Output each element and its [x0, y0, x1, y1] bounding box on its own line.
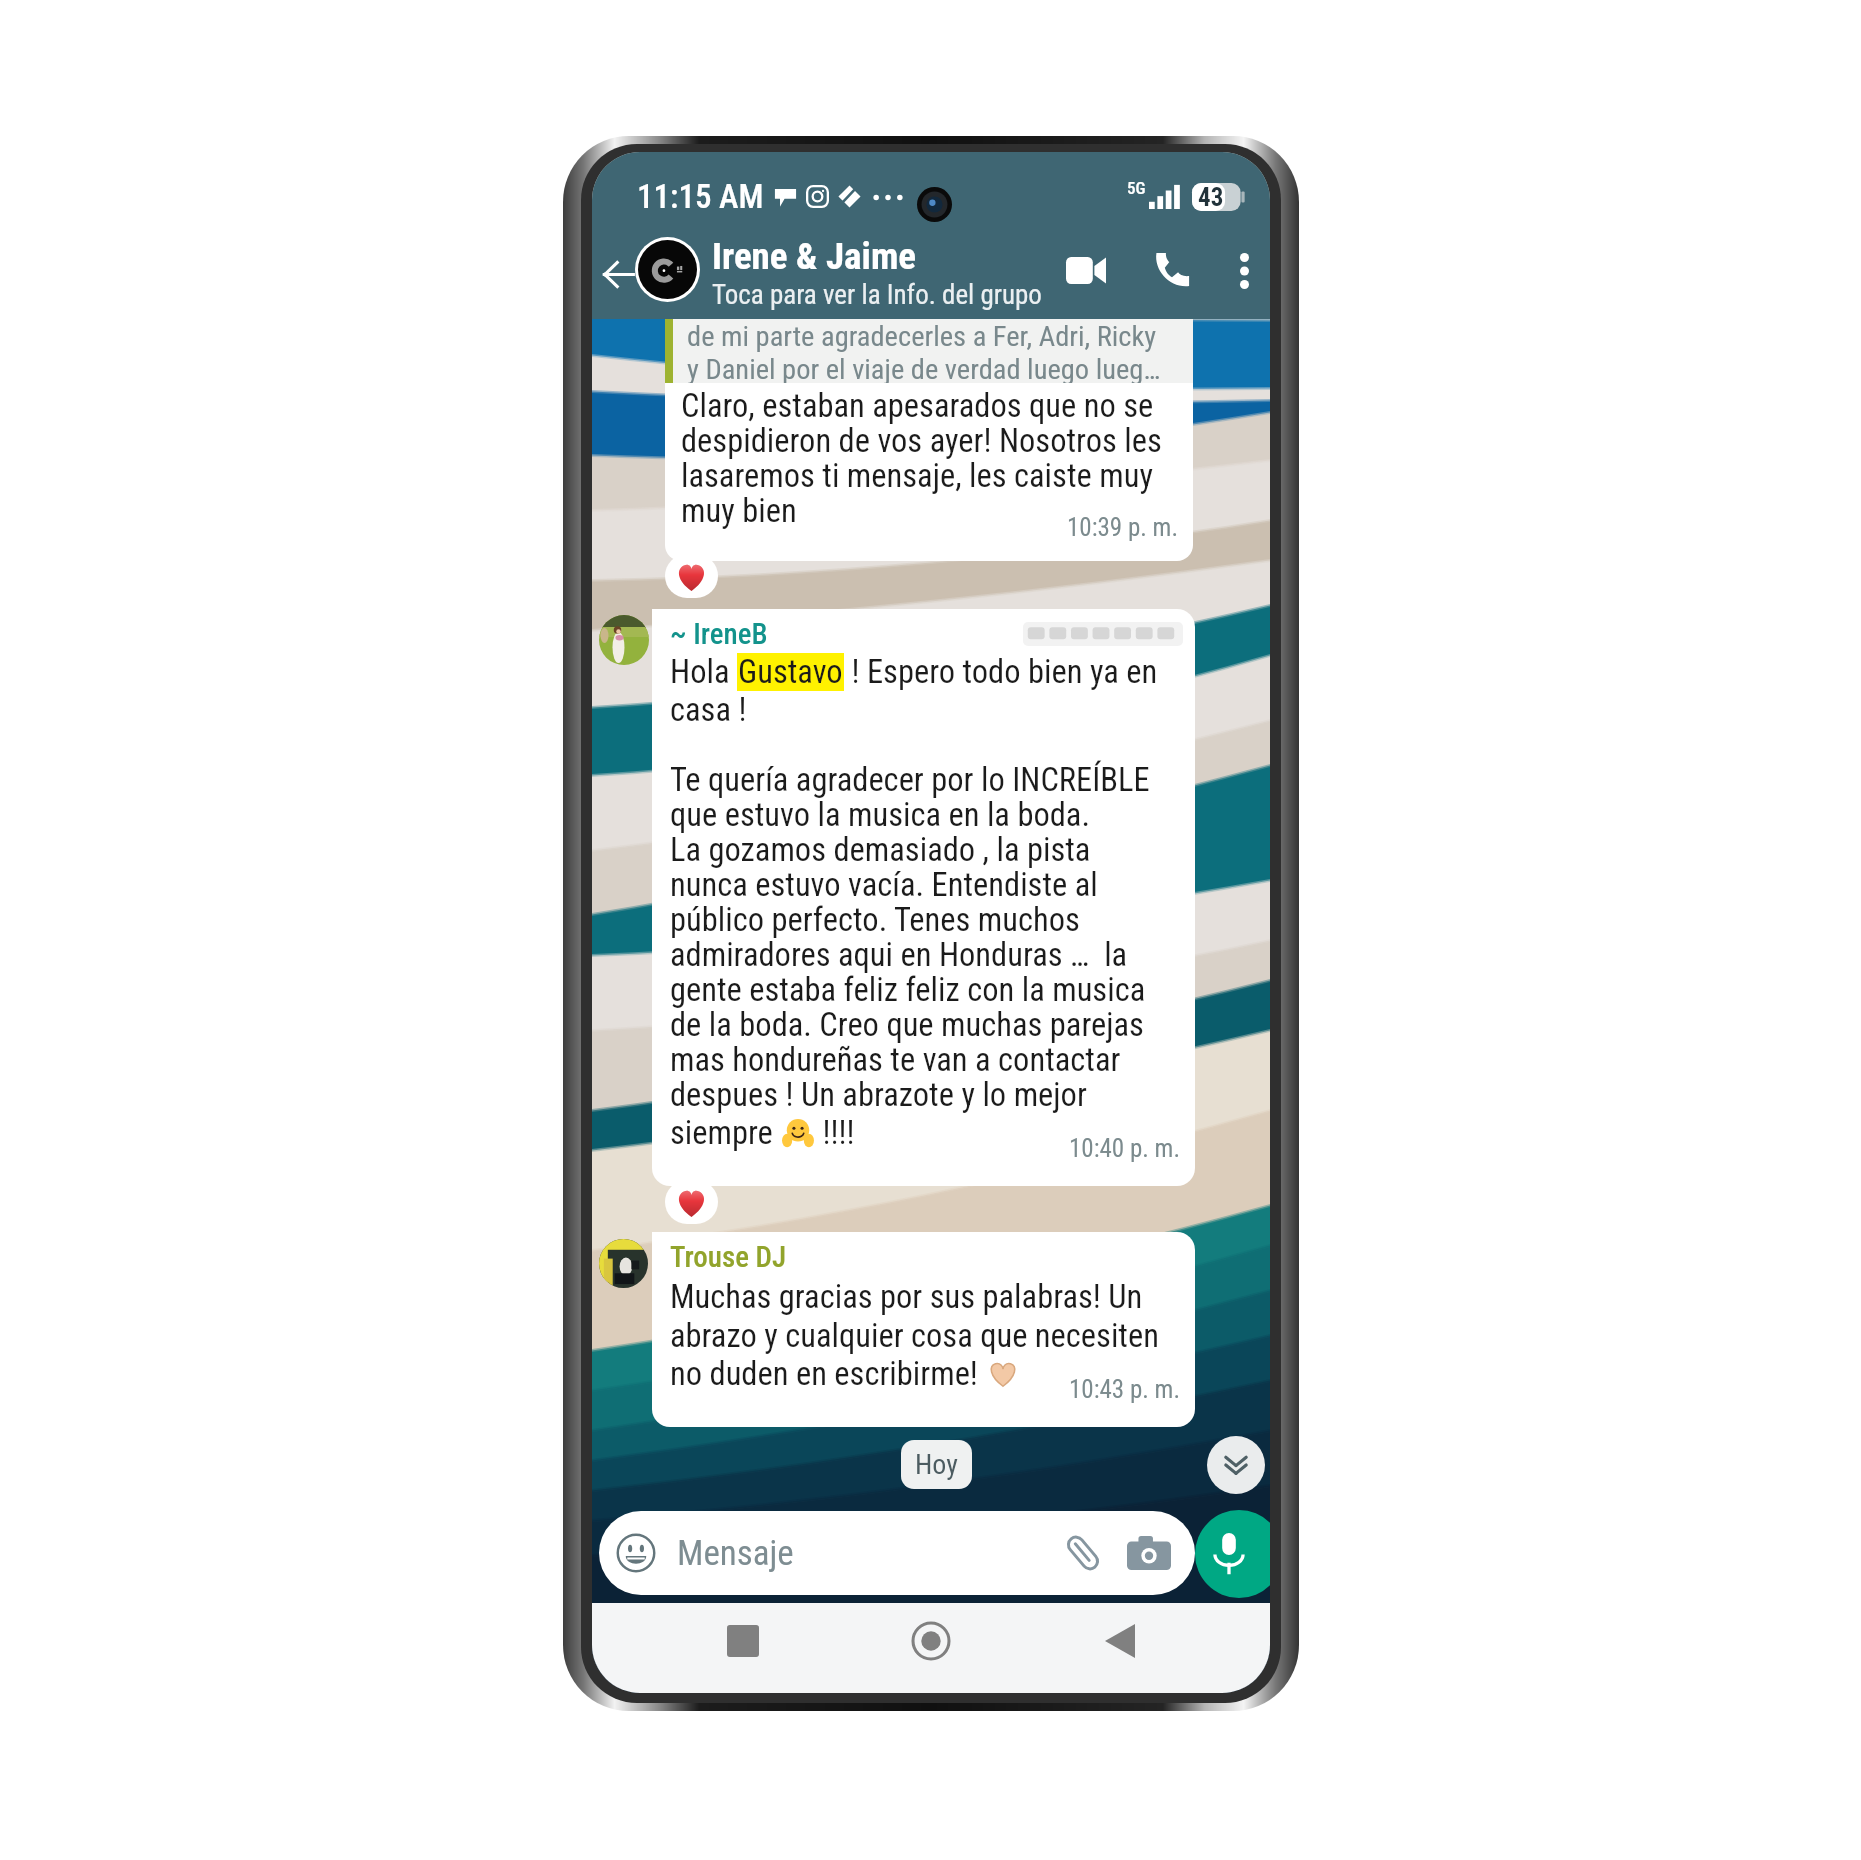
staticText: y Daniel por el viaje de verdad luego lu… [687, 353, 1161, 383]
staticText: 5G [1127, 178, 1146, 198]
staticText: ! Espero todo bien ya en [844, 653, 1158, 691]
staticText: Toca para ver la Info. del grupo [712, 279, 1042, 311]
staticText: siempre [670, 1114, 781, 1152]
staticText: Mensaje [677, 1533, 794, 1574]
button[interactable]: IreneB photo [599, 615, 649, 665]
staticText: no duden en escribirme! [670, 1355, 986, 1393]
button[interactable]: Scroll to bottom [1207, 1436, 1265, 1494]
button[interactable]: Group photo [638, 240, 697, 299]
button[interactable]: Recent apps [705, 1603, 781, 1679]
button[interactable]: Mensaje [599, 1511, 1195, 1595]
button[interactable]: More options [1216, 243, 1270, 299]
button[interactable]: Voice call [1144, 242, 1200, 298]
button[interactable]: Irene & Jaime [712, 235, 1062, 311]
button[interactable]: ~ IreneB [652, 609, 1195, 1186]
button[interactable]: Video call [1058, 242, 1114, 298]
staticText: Claro, estaban apesarados que no se desp… [681, 387, 1162, 530]
button[interactable]: Trouse DJ [652, 1232, 1195, 1427]
button[interactable]: Attach [1059, 1529, 1107, 1577]
staticText: Trouse DJ [670, 1240, 787, 1274]
button[interactable]: Back [1082, 1603, 1158, 1679]
button[interactable]: Home [893, 1603, 969, 1679]
staticText: 10:43 p. m. [1069, 1375, 1181, 1404]
button[interactable] [665, 554, 718, 598]
button[interactable]: Camera [1125, 1529, 1173, 1577]
staticText: de mi parte agradecerles a Fer, Adri, Ri… [687, 320, 1157, 353]
staticText: Hoy [915, 1448, 958, 1481]
staticText: Irene & Jaime [712, 235, 917, 278]
button[interactable]: de mi parte agradecerles a Fer, Adri, Ri… [665, 319, 1193, 561]
button[interactable]: Hoy [901, 1440, 972, 1489]
staticText: Hola [670, 653, 737, 691]
staticText: casa ! Te quería agradecer por lo INCREÍ… [670, 691, 1150, 1114]
staticText: 11:15 AM [637, 177, 764, 216]
staticText: 10:40 p. m. [1069, 1134, 1181, 1163]
button[interactable] [665, 1180, 718, 1224]
staticText: Gustavo [738, 653, 843, 691]
staticText: !!!! [815, 1114, 855, 1152]
button[interactable]: Trouse DJ photo [599, 1239, 648, 1288]
staticText: ~ IreneB [670, 617, 768, 651]
staticText: Muchas gracias por sus palabras! Un abra… [670, 1278, 1159, 1355]
staticText: 43 [1198, 183, 1224, 211]
staticText: 10:39 p. m. [1067, 513, 1179, 542]
button[interactable]: Record voice message [1195, 1510, 1270, 1598]
button[interactable]: Back [592, 246, 646, 302]
